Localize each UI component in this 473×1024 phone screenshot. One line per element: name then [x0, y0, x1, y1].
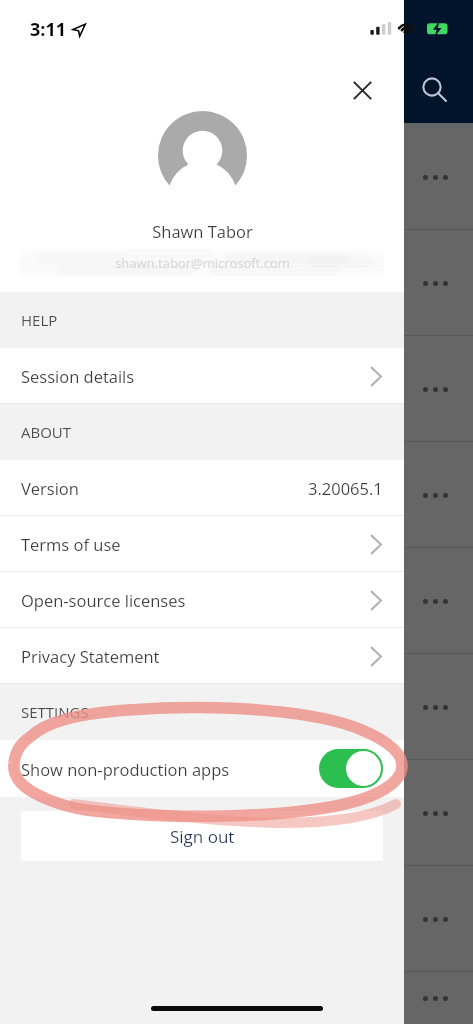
staticText: Open-source licenses: [21, 589, 186, 611]
button[interactable]: Terms of use: [0, 516, 404, 572]
button[interactable]: Open-source licenses: [0, 572, 404, 628]
staticText: Version: [21, 477, 79, 499]
button[interactable]: Search: [416, 71, 452, 107]
button[interactable]: Sign out: [21, 811, 383, 861]
button[interactable]: [0, 441, 473, 547]
button[interactable]: Session details: [0, 348, 404, 404]
button[interactable]: [0, 123, 473, 229]
staticText: Sign out: [170, 825, 235, 848]
button[interactable]: [0, 335, 473, 441]
staticText: Session details: [21, 365, 135, 387]
staticText: shawn.tabor@microsoft.com: [115, 254, 290, 272]
staticText: Terms of use: [21, 533, 121, 555]
button[interactable]: [0, 759, 473, 865]
button[interactable]: [0, 971, 473, 1024]
button[interactable]: [0, 653, 473, 759]
staticText: Privacy Statement: [21, 645, 160, 667]
staticText: HELP: [21, 310, 58, 330]
staticText: Show non-production apps: [21, 758, 230, 780]
button[interactable]: [0, 229, 473, 335]
button[interactable]: Privacy Statement: [0, 628, 404, 684]
button[interactable]: Close: [344, 72, 380, 108]
staticText: ABOUT: [21, 422, 72, 442]
button[interactable]: Version: [0, 460, 404, 516]
button[interactable]: Show non-production apps: [0, 740, 404, 797]
staticText: 3:11: [30, 17, 67, 42]
button[interactable]: [0, 865, 473, 971]
staticText: 3.20065.1: [308, 477, 383, 499]
button[interactable]: [0, 547, 473, 653]
staticText: Shawn Tabor: [152, 220, 253, 242]
staticText: SETTINGS: [21, 702, 89, 722]
